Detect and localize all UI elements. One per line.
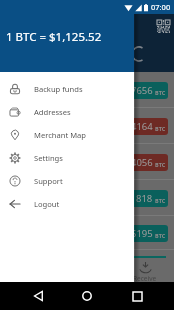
button[interactable]: Backup funds	[0, 77, 134, 100]
button[interactable]: 4056	[0, 144, 174, 180]
staticText: BTC	[155, 232, 166, 239]
staticText: 7656	[131, 84, 153, 97]
button[interactable]: Receive	[116, 256, 174, 282]
staticText: BTC	[155, 89, 166, 96]
button[interactable]: 818	[0, 180, 174, 216]
button[interactable]: Settings	[0, 146, 134, 169]
button[interactable]: Addresses	[0, 100, 134, 123]
staticText: Backup funds	[34, 84, 83, 94]
staticText: BTC	[155, 125, 166, 132]
button[interactable]: Merchant Map	[0, 123, 134, 146]
button[interactable]: Recents	[125, 284, 149, 308]
staticText: 5195	[131, 227, 153, 240]
button[interactable]: Home	[75, 284, 99, 308]
staticText: Settings	[34, 153, 63, 163]
button[interactable]: Scan QR code	[157, 20, 170, 33]
staticText: Support	[34, 176, 63, 186]
button[interactable]: 7656	[0, 72, 174, 108]
staticText: 07:00	[151, 2, 171, 12]
staticText: BTC	[155, 161, 166, 168]
button[interactable]: 5195	[0, 216, 174, 250]
staticText: Addresses	[34, 107, 71, 117]
staticText: 1 BTC = $1,125.52	[6, 29, 102, 45]
staticText: BTC	[155, 197, 166, 204]
button[interactable]: Logout	[0, 192, 134, 215]
staticText: Logout	[34, 199, 60, 209]
staticText: 4164	[131, 120, 153, 133]
button[interactable]: Back	[26, 284, 50, 308]
staticText: 4056	[131, 156, 153, 169]
button[interactable]: Support	[0, 169, 134, 192]
staticText: 818	[136, 192, 153, 205]
staticText: Merchant Map	[34, 130, 86, 140]
button[interactable]: 4164	[0, 108, 174, 144]
staticText: Receive	[133, 274, 157, 282]
